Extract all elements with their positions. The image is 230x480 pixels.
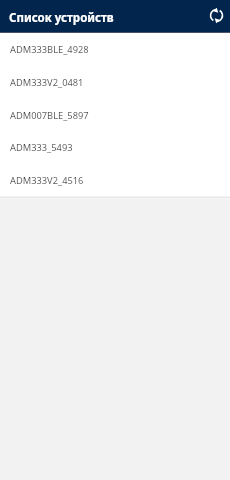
button[interactable]: ADM333_5493: [0, 131, 230, 164]
button[interactable]: ADM333BLE_4928: [0, 33, 230, 66]
staticText: ADM333V2_4516: [10, 174, 84, 187]
staticText: Список устройств: [9, 10, 114, 26]
staticText: ADM007BLE_5897: [10, 109, 89, 122]
staticText: ADM333BLE_4928: [10, 43, 89, 56]
button[interactable]: ADM333V2_4516: [0, 164, 230, 196]
button[interactable]: ADM333V2_0481: [0, 66, 230, 99]
staticText: ADM333V2_0481: [10, 76, 84, 89]
button[interactable]: Refresh device list: [207, 6, 226, 25]
staticText: ADM333_5493: [10, 141, 73, 154]
button[interactable]: ADM007BLE_5897: [0, 99, 230, 131]
